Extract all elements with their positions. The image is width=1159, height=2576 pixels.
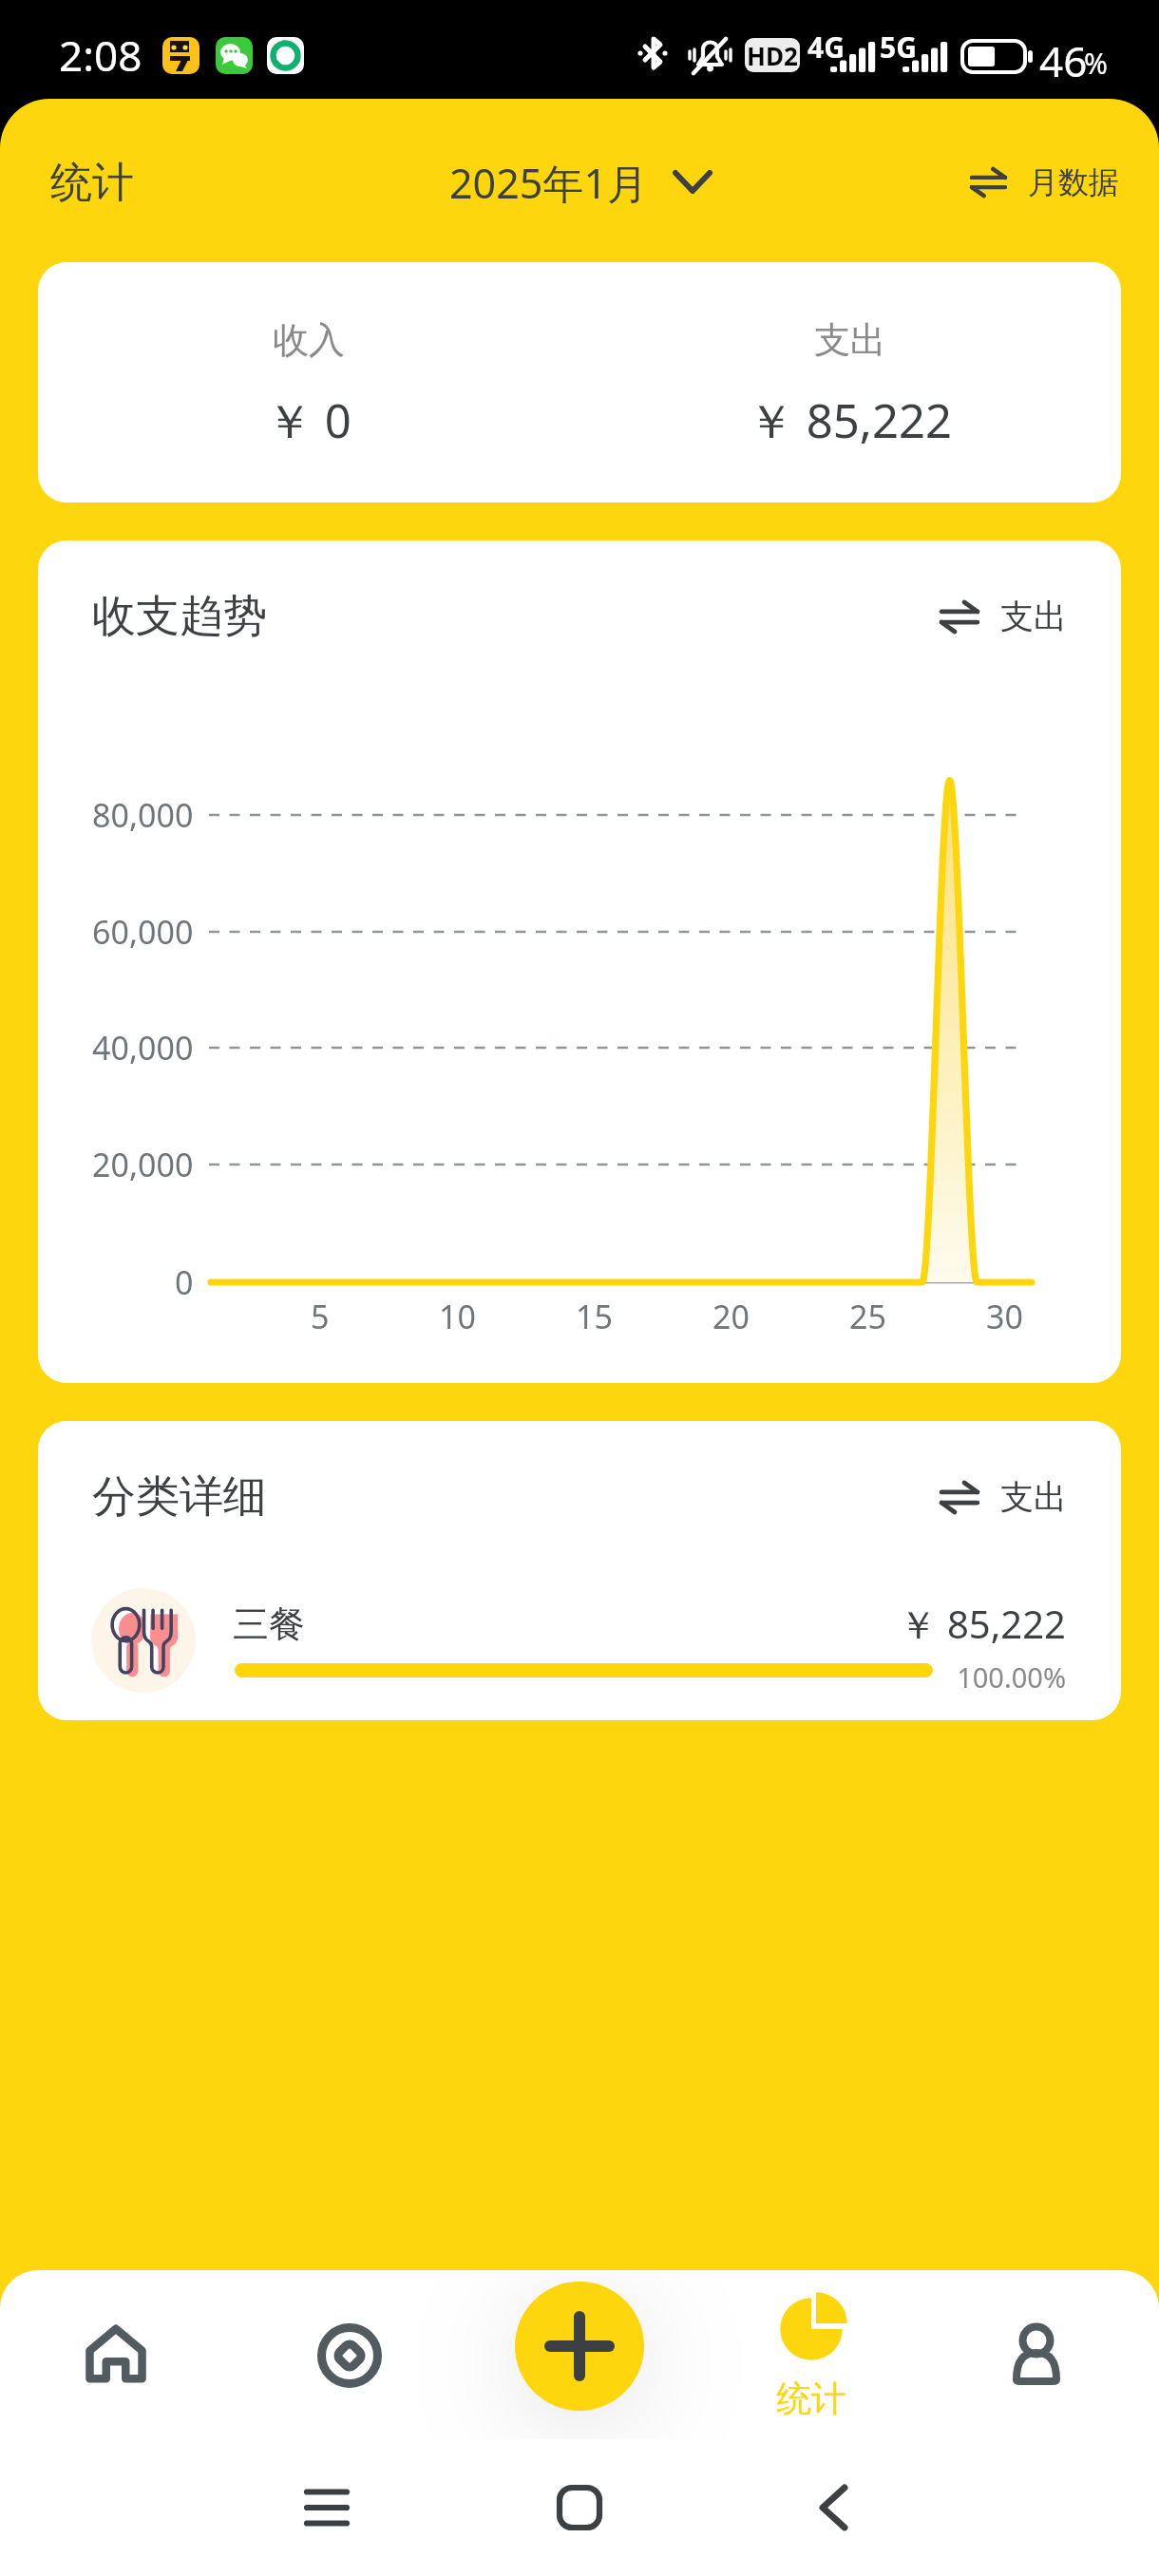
button[interactable]: 统计 <box>0 130 162 235</box>
staticText: 80,000 <box>92 793 194 837</box>
button[interactable]: 2025年1月 <box>436 130 724 235</box>
staticText: 40,000 <box>92 1026 194 1070</box>
staticText: 10 <box>439 1295 476 1338</box>
staticText: 60,000 <box>92 910 194 954</box>
staticText: 4G <box>807 28 845 66</box>
staticText: 25 <box>849 1295 886 1338</box>
staticText: 2025年1月 <box>449 155 648 211</box>
button[interactable]: Recent apps <box>279 2460 374 2555</box>
staticText: 收入 <box>273 317 345 363</box>
button[interactable]: 支出 <box>917 1449 1067 1544</box>
button[interactable]: Add transaction <box>515 2282 644 2411</box>
staticText: 15 <box>576 1295 613 1338</box>
staticText: 20,000 <box>92 1143 194 1186</box>
staticText: ￥ 85,222 <box>748 388 953 449</box>
button[interactable]: 收入 <box>38 262 1121 502</box>
staticText: 支出 <box>1000 596 1067 637</box>
staticText: HD2 <box>747 39 798 72</box>
staticText: 5G <box>880 28 917 66</box>
staticText: ￥ 85,222 <box>798 1598 1066 1650</box>
staticText: 三餐 <box>233 1601 305 1647</box>
staticText: 0 <box>175 1260 194 1304</box>
staticText: 统计 <box>776 2377 846 2421</box>
button[interactable]: 三餐 <box>38 1573 1121 1711</box>
staticText: 支出 <box>1000 1476 1067 1518</box>
button[interactable]: 月数据 <box>951 130 1159 235</box>
button[interactable]: 支出 <box>917 569 1067 664</box>
staticText: 30 <box>986 1295 1023 1338</box>
staticText: % <box>1084 44 1108 83</box>
staticText: 20 <box>712 1295 750 1338</box>
staticText: 月数据 <box>1028 163 1119 201</box>
staticText: 统计 <box>50 157 134 209</box>
staticText: 46 <box>1039 32 1088 89</box>
staticText: ￥ 0 <box>266 388 351 449</box>
staticText: 支出 <box>814 317 886 363</box>
staticText: 100.00% <box>855 1658 1066 1695</box>
button[interactable]: Home <box>532 2460 627 2555</box>
button[interactable]: Statistics <box>695 2278 927 2430</box>
staticText: 5 <box>311 1295 330 1338</box>
staticText: 2:08 <box>59 27 142 84</box>
staticText: 分类详细 <box>92 1469 267 1525</box>
button[interactable]: Profile <box>927 2278 1159 2430</box>
staticText: 收支趋势 <box>92 589 267 644</box>
button[interactable]: Home <box>0 2278 232 2430</box>
button[interactable]: Back <box>785 2460 880 2555</box>
button[interactable]: Discover <box>232 2278 464 2430</box>
